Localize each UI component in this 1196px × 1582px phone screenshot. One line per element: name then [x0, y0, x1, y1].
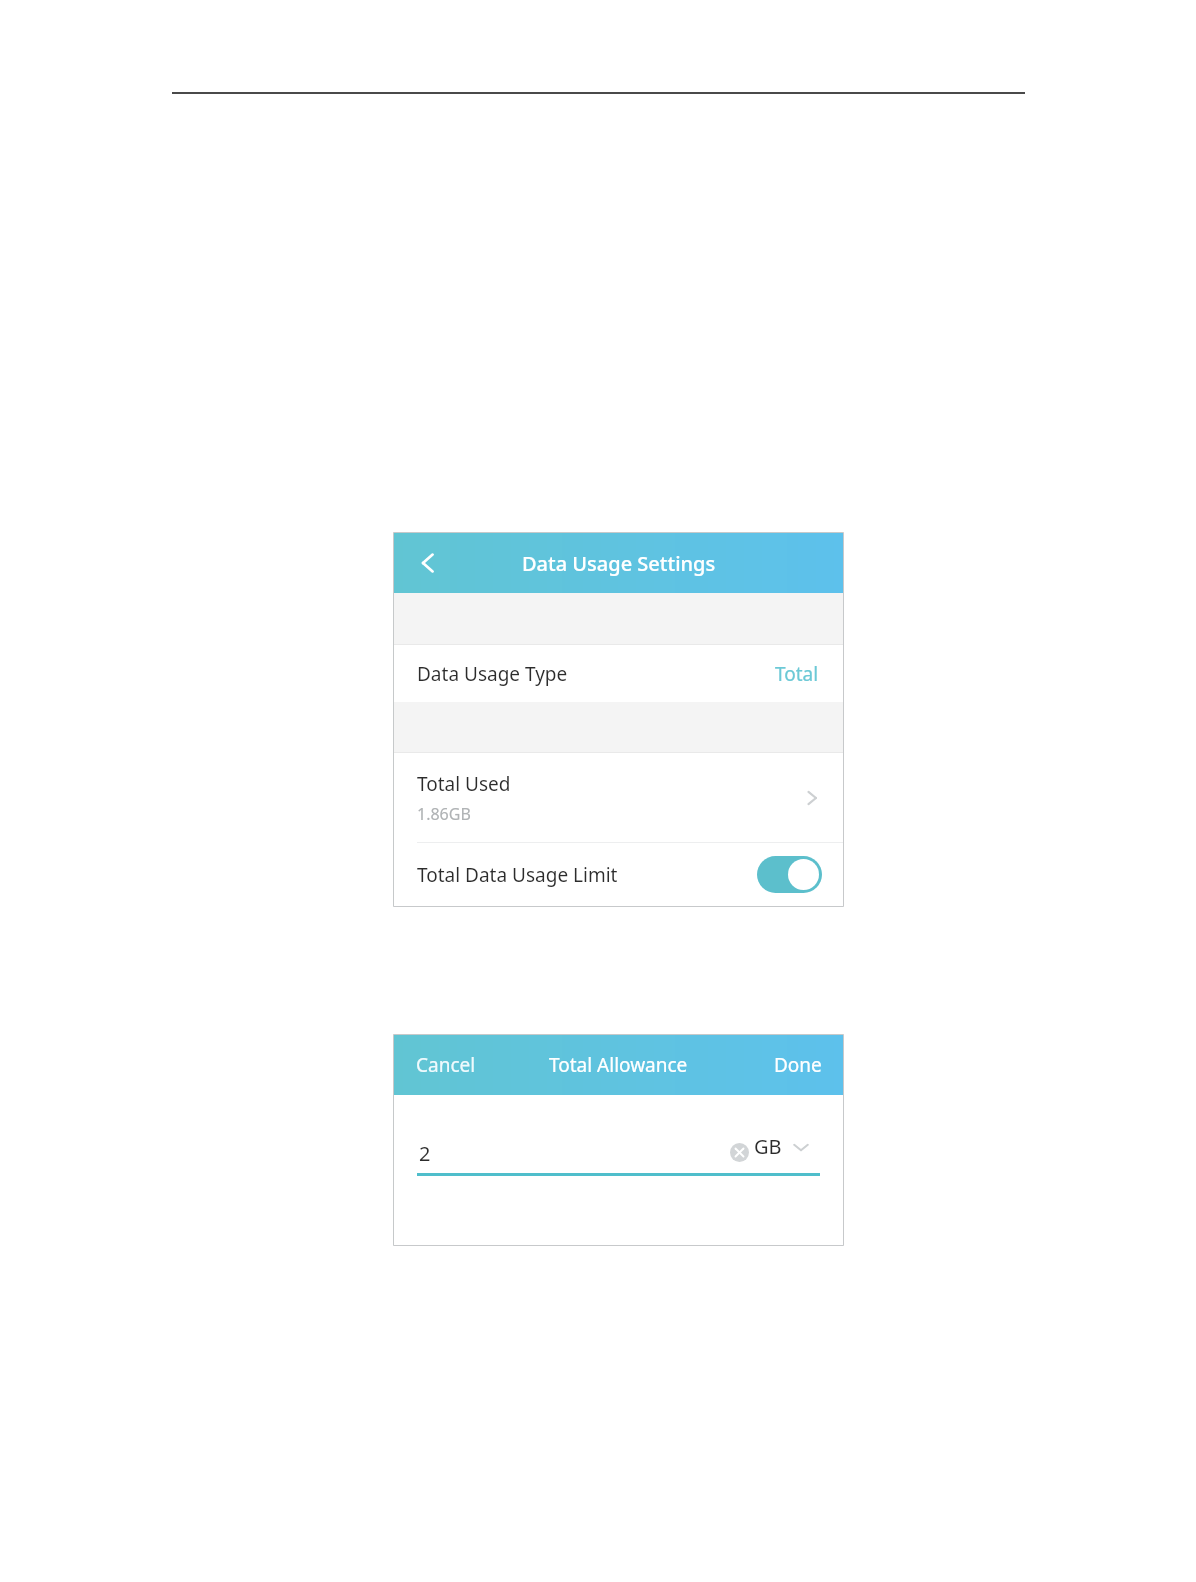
- button[interactable]: Done: [762, 1043, 843, 1087]
- staticText: Cancel: [416, 1052, 476, 1078]
- button[interactable]: Total Data Usage Limit toggle: [757, 856, 822, 893]
- staticText: Data Usage Type: [417, 661, 568, 687]
- staticText: Total Used: [417, 771, 511, 797]
- staticText: 2: [419, 1140, 431, 1167]
- button[interactable]: Back: [406, 540, 452, 586]
- staticText: Total Data Usage Limit: [417, 862, 618, 888]
- button[interactable]: Data Usage Type: [394, 645, 843, 702]
- staticText: 1.86GB: [417, 803, 471, 825]
- button[interactable]: Total Used: [394, 753, 843, 843]
- button[interactable]: GB: [754, 1133, 811, 1160]
- staticText: Total Allowance: [549, 1052, 688, 1078]
- button[interactable]: Total Data Usage Limit: [394, 843, 843, 906]
- staticText: Total: [775, 661, 819, 687]
- button[interactable]: Clear: [726, 1139, 752, 1165]
- staticText: Data Usage Settings: [522, 550, 716, 577]
- button[interactable]: Cancel: [394, 1043, 488, 1087]
- staticText: Done: [774, 1052, 822, 1078]
- staticText: GB: [754, 1133, 782, 1160]
